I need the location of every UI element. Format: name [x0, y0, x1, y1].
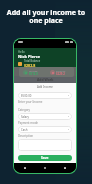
staticText: Income	[29, 69, 38, 72]
staticText: $282.8	[24, 63, 36, 68]
staticText: $512.0	[29, 72, 38, 76]
button[interactable]: Cash	[18, 126, 72, 133]
staticText: Hello	[18, 50, 25, 54]
staticText: Total Balance	[24, 59, 41, 63]
staticText: Add all your income to one place	[0, 8, 92, 25]
staticText: Add Income	[18, 85, 72, 89]
staticText: Expense	[56, 69, 66, 72]
button[interactable]: $500.00	[18, 92, 72, 99]
staticText: Save	[41, 156, 49, 160]
staticText: $500.00	[21, 94, 32, 98]
staticText: Payment mode	[18, 121, 38, 125]
staticText: Cash	[21, 128, 28, 132]
staticText: Enter your Income	[18, 100, 43, 104]
staticText: Nick Pierce	[18, 54, 41, 59]
staticText: Add Work	[37, 77, 54, 82]
staticText: Category	[18, 108, 30, 112]
button[interactable]: Save	[18, 155, 72, 161]
staticText: $229.2	[56, 72, 65, 76]
staticText: Description	[18, 134, 34, 138]
button[interactable]: Salary	[18, 113, 72, 120]
staticText: Salary	[21, 115, 29, 119]
